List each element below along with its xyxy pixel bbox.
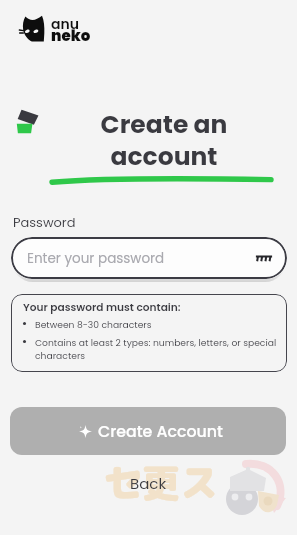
staticText: anu xyxy=(51,14,79,34)
staticText: Enter your password xyxy=(27,249,165,268)
staticText: neko xyxy=(51,25,91,46)
button[interactable]: anu neko home xyxy=(19,14,95,46)
staticText: Create Account xyxy=(98,420,223,442)
staticText: Between 8-30 characters xyxy=(35,318,152,331)
staticText: Your password must contain: xyxy=(23,300,181,315)
button[interactable]: Create Account xyxy=(10,407,286,455)
button[interactable]: Enter your password xyxy=(11,237,287,279)
button[interactable]: Back xyxy=(124,467,173,500)
staticText: Contains at least 2 types: numbers, lett… xyxy=(35,336,285,362)
staticText: セ更ス xyxy=(104,456,219,509)
button[interactable]: Show password xyxy=(255,249,273,267)
staticText: Create an account xyxy=(60,107,268,173)
staticText: Password xyxy=(13,213,76,231)
